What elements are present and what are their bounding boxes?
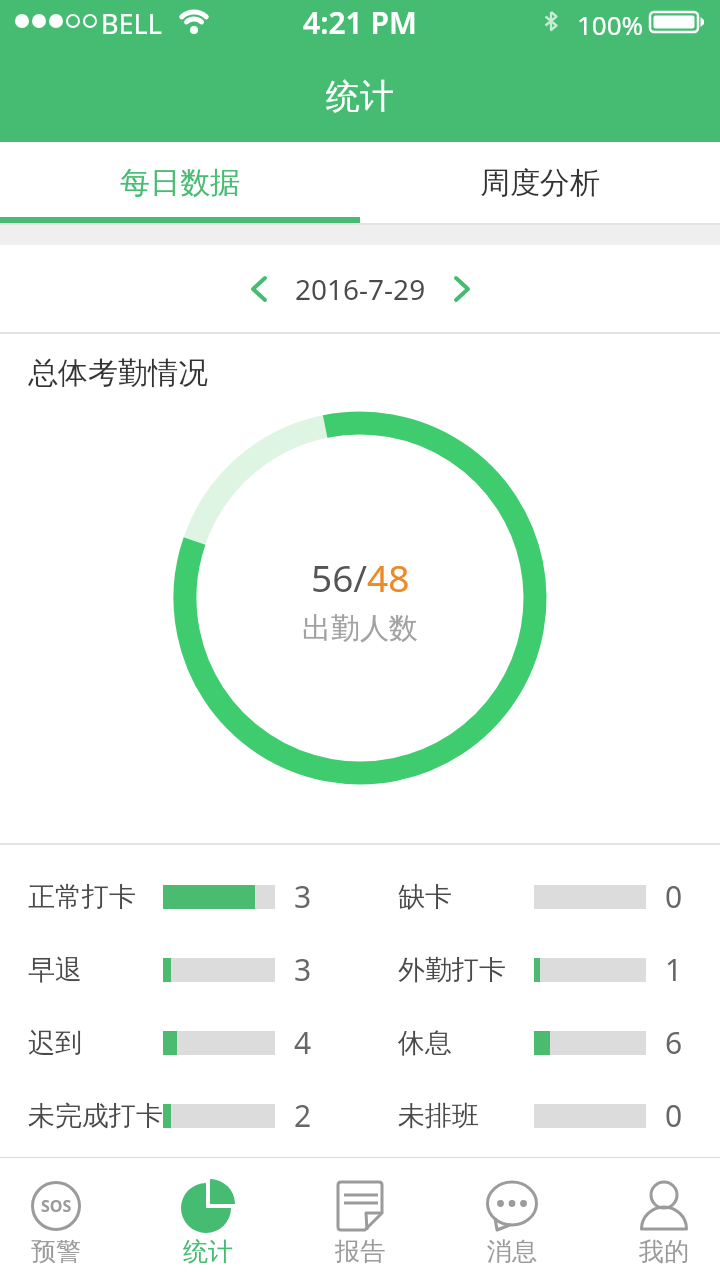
staticText: 总体考勤情况 <box>28 354 208 392</box>
button[interactable]: 休息 <box>360 1022 720 1063</box>
staticText: 报告 <box>335 1236 385 1267</box>
button[interactable]: 2016-7-29 <box>252 270 469 308</box>
staticText: 100% <box>577 7 644 42</box>
staticText: 0 <box>665 876 683 917</box>
staticText: 正常打卡 <box>28 880 136 914</box>
button[interactable]: 早退 <box>0 949 360 990</box>
button[interactable]: SOS <box>16 1158 96 1278</box>
staticText: 我的 <box>639 1236 689 1267</box>
staticText: 预警 <box>31 1236 81 1267</box>
button[interactable]: 报告 <box>320 1158 400 1278</box>
staticText: 未完成打卡 <box>28 1099 163 1133</box>
staticText: 4:21 PM <box>303 2 417 43</box>
staticText: 6 <box>665 1022 683 1063</box>
staticText: 2 <box>294 1095 312 1136</box>
staticText: 早退 <box>28 953 82 987</box>
button[interactable]: 缺卡 <box>360 876 720 917</box>
button[interactable]: 我的 <box>624 1158 704 1278</box>
button[interactable]: 统计 <box>168 1158 248 1278</box>
staticText: 缺卡 <box>398 880 452 914</box>
button[interactable]: 正常打卡 <box>0 876 360 917</box>
staticText: 0 <box>665 1095 683 1136</box>
staticText: BELL <box>101 5 162 42</box>
staticText: 2016-7-29 <box>295 270 426 308</box>
staticText: 迟到 <box>28 1026 82 1060</box>
staticText: 每日数据 <box>120 164 240 202</box>
staticText: 3 <box>294 949 312 990</box>
button[interactable]: 每日数据 <box>0 142 360 223</box>
staticText: 外勤打卡 <box>398 953 506 987</box>
staticText: 未排班 <box>398 1099 479 1133</box>
button[interactable]: 消息 <box>472 1158 552 1278</box>
button[interactable]: 外勤打卡 <box>360 949 720 990</box>
staticText: 消息 <box>487 1236 537 1267</box>
staticText: SOS <box>41 1195 72 1217</box>
staticText: 4 <box>294 1022 312 1063</box>
button[interactable]: 未完成打卡 <box>0 1095 360 1136</box>
staticText: 休息 <box>398 1026 452 1060</box>
staticText: 出勤人数 <box>302 610 418 647</box>
staticText: 3 <box>294 876 312 917</box>
staticText: 1 <box>665 949 683 990</box>
staticText: 统计 <box>326 75 394 118</box>
staticText: 56/48 <box>311 552 410 598</box>
staticText: 统计 <box>183 1236 233 1267</box>
button[interactable]: 迟到 <box>0 1022 360 1063</box>
button[interactable]: 未排班 <box>360 1095 720 1136</box>
button[interactable]: 周度分析 <box>360 142 720 223</box>
staticText: 周度分析 <box>480 164 600 202</box>
button[interactable] <box>252 277 265 301</box>
button[interactable] <box>456 277 469 301</box>
